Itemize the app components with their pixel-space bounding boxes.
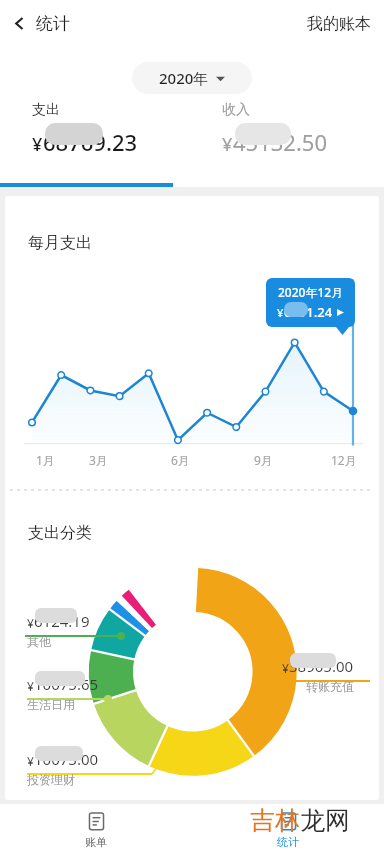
- staticText: 投资理财: [27, 772, 75, 787]
- staticText: 2020年: [159, 68, 209, 88]
- button[interactable]: Back: [0, 5, 82, 42]
- staticText: 每月支出: [28, 233, 92, 253]
- staticText: 支出: [32, 101, 60, 119]
- staticText: 12月: [331, 452, 357, 468]
- staticText: 10075.65: [34, 674, 99, 694]
- staticText: 68769.23: [43, 127, 138, 157]
- staticText: 统计: [277, 835, 299, 849]
- staticText: 2020年12月: [278, 284, 344, 300]
- button[interactable]: 支出: [0, 101, 190, 157]
- staticText: 吉林: [250, 805, 300, 836]
- staticText: 账单: [85, 835, 107, 849]
- button[interactable]: 收入: [190, 101, 384, 157]
- staticText: 其他: [27, 634, 51, 649]
- staticText: ¥: [222, 132, 233, 157]
- staticText: 6月: [171, 452, 190, 468]
- button[interactable]: 统计: [192, 806, 384, 855]
- staticText: 龙网: [300, 805, 350, 836]
- button[interactable]: 账单: [0, 806, 192, 855]
- staticText: ¥: [27, 753, 34, 769]
- staticText: 38905.00: [289, 656, 354, 676]
- staticText: 支出分类: [28, 523, 92, 543]
- button[interactable]: ¥: [27, 674, 99, 712]
- staticText: 我的账本: [307, 14, 371, 34]
- staticText: 转账充值: [306, 679, 354, 694]
- staticText: 统计: [36, 13, 70, 34]
- staticText: 10073.00: [34, 749, 99, 769]
- button[interactable]: 我的账本: [294, 5, 384, 43]
- staticText: 生活日用: [27, 697, 75, 712]
- staticText: 3月: [89, 452, 108, 468]
- button[interactable]: 2020年: [132, 62, 252, 94]
- button[interactable]: ¥: [27, 611, 90, 649]
- staticText: 1月: [36, 452, 55, 468]
- staticText: ¥: [282, 660, 289, 676]
- button[interactable]: ¥: [27, 749, 99, 787]
- button[interactable]: ¥: [282, 656, 354, 694]
- staticText: 9月: [254, 452, 273, 468]
- staticText: 45132.50: [233, 127, 327, 157]
- staticText: ¥: [27, 615, 34, 631]
- staticText: 收入: [222, 101, 250, 119]
- button[interactable]: 2020年12月: [266, 278, 355, 327]
- staticText: ¥: [32, 132, 43, 157]
- staticText: ¥: [277, 305, 284, 320]
- staticText: ¥: [27, 678, 34, 694]
- staticText: 6124.19: [34, 611, 90, 631]
- staticText: 6591.24: [284, 303, 333, 321]
